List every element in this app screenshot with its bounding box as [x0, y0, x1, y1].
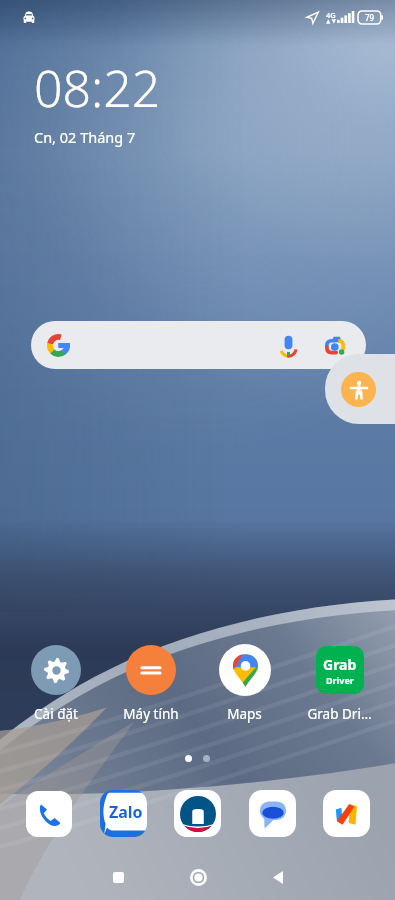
button[interactable]: [249, 790, 296, 837]
staticText: 08:22: [34, 54, 161, 122]
button[interactable]: Back: [255, 855, 301, 900]
button[interactable]: Maps: [202, 644, 287, 723]
button[interactable]: Máy tính: [108, 644, 193, 723]
staticText: Cn, 02 Tháng 7: [34, 127, 136, 147]
staticText: 79: [365, 12, 375, 23]
other: Driving mode: [22, 11, 36, 23]
button[interactable]: Cài đặt: [13, 644, 98, 723]
staticText: Grab: [323, 655, 357, 674]
button[interactable]: Grab: [297, 644, 382, 723]
button[interactable]: Zalo: [100, 790, 147, 837]
button[interactable]: Recents: [95, 855, 141, 900]
button[interactable]: Google Lens: [324, 335, 346, 357]
staticText: Cài đặt: [34, 705, 78, 723]
button[interactable]: [25, 790, 72, 837]
button[interactable]: Voice search: [31, 321, 366, 369]
staticText: Grab Dri…: [307, 705, 372, 723]
staticText: 4G: [326, 10, 336, 20]
staticText: Zalo: [109, 801, 143, 823]
staticText: Driver: [326, 674, 354, 686]
button[interactable]: Voice search: [277, 334, 300, 357]
staticText: Maps: [227, 705, 262, 723]
button[interactable]: [323, 790, 370, 837]
button[interactable]: Accessibility menu: [325, 354, 395, 424]
button[interactable]: [174, 790, 221, 837]
button[interactable]: Home: [175, 855, 221, 900]
staticText: Máy tính: [123, 705, 179, 723]
